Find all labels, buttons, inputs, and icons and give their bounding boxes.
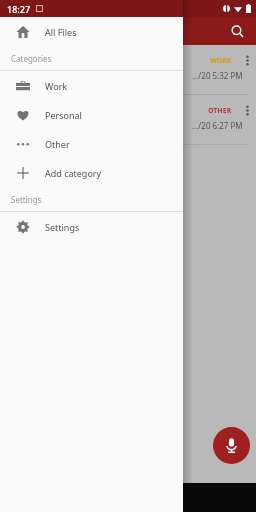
button[interactable]: WORK xyxy=(0,45,256,95)
staticText: 18:27 xyxy=(7,3,31,15)
staticText: Settings xyxy=(45,221,80,233)
button[interactable]: Work xyxy=(0,71,183,100)
staticText: Work xyxy=(45,80,68,92)
staticText: Other xyxy=(45,138,70,150)
button[interactable]: Add category xyxy=(0,158,183,187)
button[interactable]: Record voice note xyxy=(213,427,250,464)
button[interactable]: Personal xyxy=(0,100,183,129)
button[interactable]: More options xyxy=(240,53,254,67)
button[interactable]: OTHER xyxy=(0,95,256,145)
staticText: WORK xyxy=(210,56,232,66)
staticText: All Files xyxy=(45,26,77,38)
staticText: …/20 6:27 PM xyxy=(192,120,243,131)
button[interactable]: Other xyxy=(0,129,183,158)
button[interactable]: Search xyxy=(224,18,250,44)
button[interactable]: All Files xyxy=(0,17,183,46)
staticText: Personal xyxy=(45,109,82,121)
button[interactable]: Settings xyxy=(0,212,183,241)
staticText: Categories xyxy=(11,53,52,64)
staticText: Add category xyxy=(45,167,102,179)
staticText: …/20 5:32 PM xyxy=(192,70,243,81)
staticText: OTHER xyxy=(208,106,232,116)
button[interactable]: More options xyxy=(240,103,254,117)
staticText: Settings xyxy=(11,194,42,205)
